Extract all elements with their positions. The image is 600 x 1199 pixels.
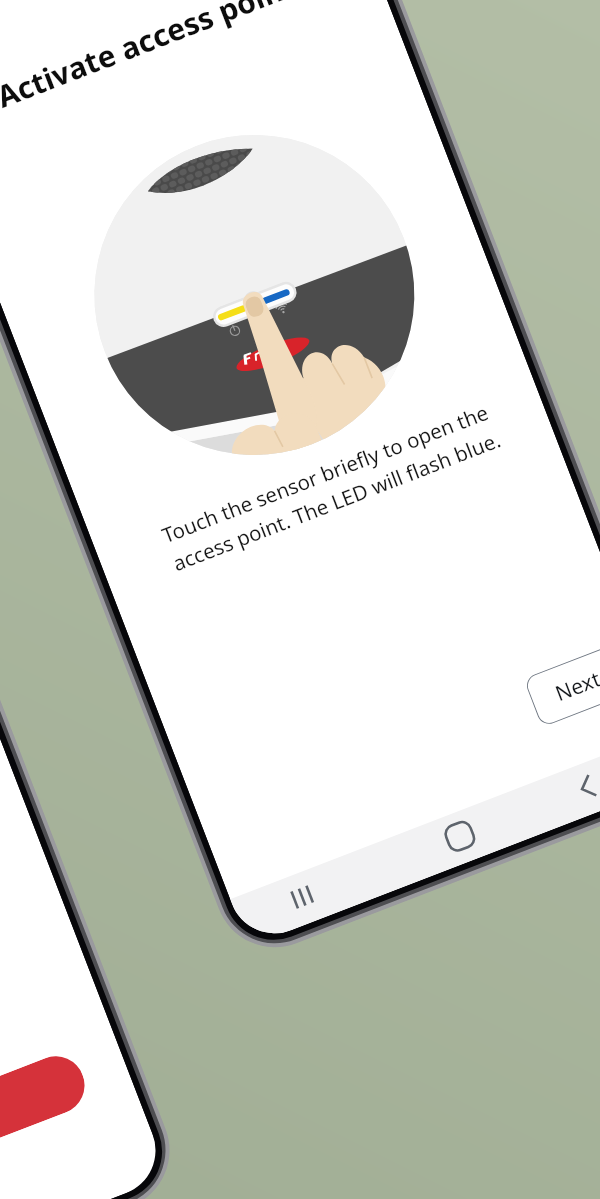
button[interactable]: Home: [419, 801, 502, 874]
staticText: Activate access point: [0, 0, 301, 117]
staticText: Next: [551, 664, 600, 708]
button[interactable]: Back: [546, 752, 600, 825]
staticText: Touch the sensor briefly to open the acc…: [158, 397, 504, 577]
button[interactable]: Next: [523, 644, 600, 727]
button[interactable]: Recent apps: [264, 861, 347, 934]
button[interactable]: [0, 1048, 93, 1199]
